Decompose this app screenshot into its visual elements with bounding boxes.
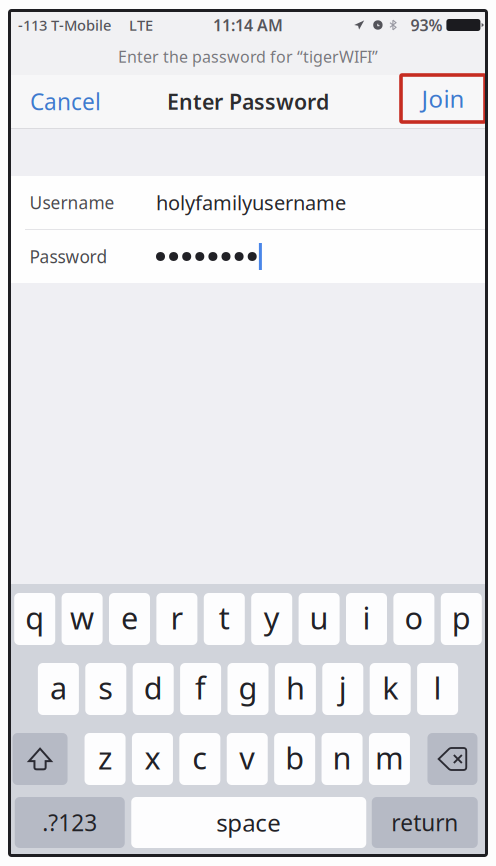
button[interactable]: k [370, 663, 411, 715]
button[interactable]: c [179, 733, 220, 785]
staticText: Enter Password [167, 87, 329, 116]
staticText: Join [421, 83, 464, 114]
staticText: j [339, 667, 347, 708]
button[interactable]: i [346, 593, 387, 645]
button[interactable]: p [441, 593, 482, 645]
button[interactable]: z [85, 733, 126, 785]
button[interactable]: f [180, 663, 221, 715]
staticText: r [170, 597, 183, 638]
staticText: w [70, 597, 94, 638]
staticText: e [121, 597, 138, 638]
button[interactable]: b [274, 733, 315, 785]
button[interactable]: n [322, 733, 363, 785]
button[interactable]: Password [11, 230, 485, 283]
staticText: z [98, 737, 112, 778]
button[interactable]: Shift [13, 733, 68, 785]
staticText: return [391, 807, 458, 837]
button[interactable]: x [132, 733, 173, 785]
staticText: k [382, 667, 398, 708]
button[interactable]: l [417, 663, 458, 715]
button[interactable]: Username [11, 176, 485, 229]
button[interactable]: h [275, 663, 316, 715]
staticText: p [452, 597, 471, 638]
staticText: space [216, 807, 281, 838]
staticText: q [25, 597, 44, 638]
button[interactable]: space [131, 797, 366, 848]
button[interactable]: Delete [427, 733, 477, 785]
button[interactable]: v [227, 733, 268, 785]
staticText: v [239, 737, 255, 778]
staticText: -113 T-Mobile [18, 15, 111, 35]
staticText: y [264, 597, 280, 638]
button[interactable]: u [299, 593, 340, 645]
staticText: l [434, 667, 442, 708]
button[interactable]: r [156, 593, 197, 645]
button[interactable]: d [133, 663, 174, 715]
button[interactable]: t [204, 593, 245, 645]
staticText: h [286, 667, 305, 708]
staticText: c [192, 737, 207, 778]
staticText: t [219, 597, 230, 638]
button[interactable]: w [62, 593, 103, 645]
button[interactable]: Join [401, 75, 485, 128]
button[interactable]: g [227, 663, 268, 715]
staticText: u [310, 597, 329, 638]
staticText: m [375, 737, 404, 778]
staticText: Cancel [30, 86, 101, 116]
button[interactable]: return [372, 797, 478, 848]
staticText: a [50, 667, 67, 708]
staticText: 11:14 AM [213, 14, 283, 36]
button[interactable]: m [369, 733, 410, 785]
staticText: d [144, 667, 163, 708]
staticText: holyfamilyusername [156, 189, 346, 216]
button[interactable]: .?123 [15, 797, 125, 848]
staticText: Password [29, 245, 107, 268]
button[interactable]: y [251, 593, 292, 645]
button[interactable]: q [14, 593, 55, 645]
staticText: g [238, 667, 257, 708]
staticText: .?123 [42, 807, 97, 837]
staticText: Username [29, 191, 114, 214]
button[interactable]: a [38, 663, 79, 715]
button[interactable]: o [393, 593, 434, 645]
staticText: LTE [129, 15, 153, 35]
staticText: i [362, 597, 370, 638]
staticText: x [144, 737, 160, 778]
staticText: s [98, 667, 113, 708]
button[interactable]: j [322, 663, 363, 715]
button[interactable]: e [109, 593, 150, 645]
staticText: Enter the password for “tigerWIFI” [118, 46, 378, 67]
staticText: o [404, 597, 423, 638]
staticText: 93% [410, 14, 442, 36]
staticText: b [285, 737, 304, 778]
button[interactable]: Cancel [11, 75, 117, 128]
staticText: f [195, 667, 206, 708]
button[interactable]: s [85, 663, 126, 715]
staticText: n [333, 737, 352, 778]
